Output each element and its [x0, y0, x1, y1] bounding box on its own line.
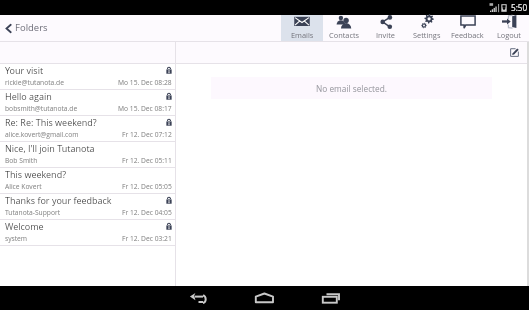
staticText: Logout: [497, 30, 521, 40]
staticText: Thanks for your feedback: [5, 194, 112, 206]
staticText: bobsmith@tutanota.de: [5, 104, 78, 113]
staticText: Fr 12. Dec 03:21: [122, 234, 172, 243]
button[interactable]: Emails: [281, 15, 323, 42]
staticText: No email selected.: [316, 83, 387, 94]
staticText: This weekend?: [5, 168, 67, 180]
staticText: Tutanota-Support: [5, 208, 61, 217]
staticText: Fr 12. Dec 05:11: [122, 156, 172, 165]
button[interactable]: Compose new email: [508, 46, 521, 59]
button[interactable]: Welcome: [0, 220, 175, 245]
button[interactable]: Folders: [0, 15, 176, 42]
button[interactable]: Logout: [488, 15, 529, 42]
button[interactable]: Nice, I'll join Tutanota: [0, 142, 175, 167]
staticText: Fr 12. Dec 05:05: [122, 182, 172, 191]
staticText: Alice Kovert: [5, 182, 42, 191]
staticText: Bob Smith: [5, 156, 38, 165]
button[interactable]: Feedback: [447, 15, 488, 42]
button[interactable]: Back: [178, 286, 220, 310]
staticText: Mo 15. Dec 08:28: [118, 78, 172, 87]
staticText: Fr 12. Dec 07:12: [122, 130, 172, 139]
staticText: Hello again: [5, 90, 52, 102]
staticText: Invite: [376, 30, 395, 40]
button[interactable]: Thanks for your feedback: [0, 194, 175, 219]
staticText: Mo 15. Dec 08:17: [118, 104, 172, 113]
button[interactable]: Contacts: [323, 15, 365, 42]
staticText: alice.kovert@gmail.com: [5, 130, 79, 139]
button[interactable]: Re: Re: This weekend?: [0, 116, 175, 141]
staticText: Contacts: [329, 30, 360, 40]
staticText: Fr 12. Dec 04:05: [122, 208, 172, 217]
staticText: Nice, I'll join Tutanota: [5, 142, 95, 154]
staticText: system: [5, 234, 28, 243]
button[interactable]: Settings: [406, 15, 447, 42]
staticText: Feedback: [451, 30, 484, 40]
staticText: Folders: [15, 21, 48, 34]
staticText: Emails: [291, 30, 314, 40]
button[interactable]: Your visit: [0, 64, 175, 89]
staticText: 5:50: [511, 2, 528, 13]
staticText: rickie@tutanota.de: [5, 78, 64, 87]
staticText: Welcome: [5, 220, 44, 232]
button[interactable]: Recent apps: [311, 286, 353, 310]
button[interactable]: Home: [243, 286, 285, 310]
button[interactable]: This weekend?: [0, 168, 175, 193]
staticText: Settings: [413, 30, 441, 40]
button[interactable]: Invite: [365, 15, 406, 42]
staticText: Your visit: [5, 64, 44, 76]
button[interactable]: Hello again: [0, 90, 175, 115]
staticText: Re: Re: This weekend?: [5, 116, 97, 128]
